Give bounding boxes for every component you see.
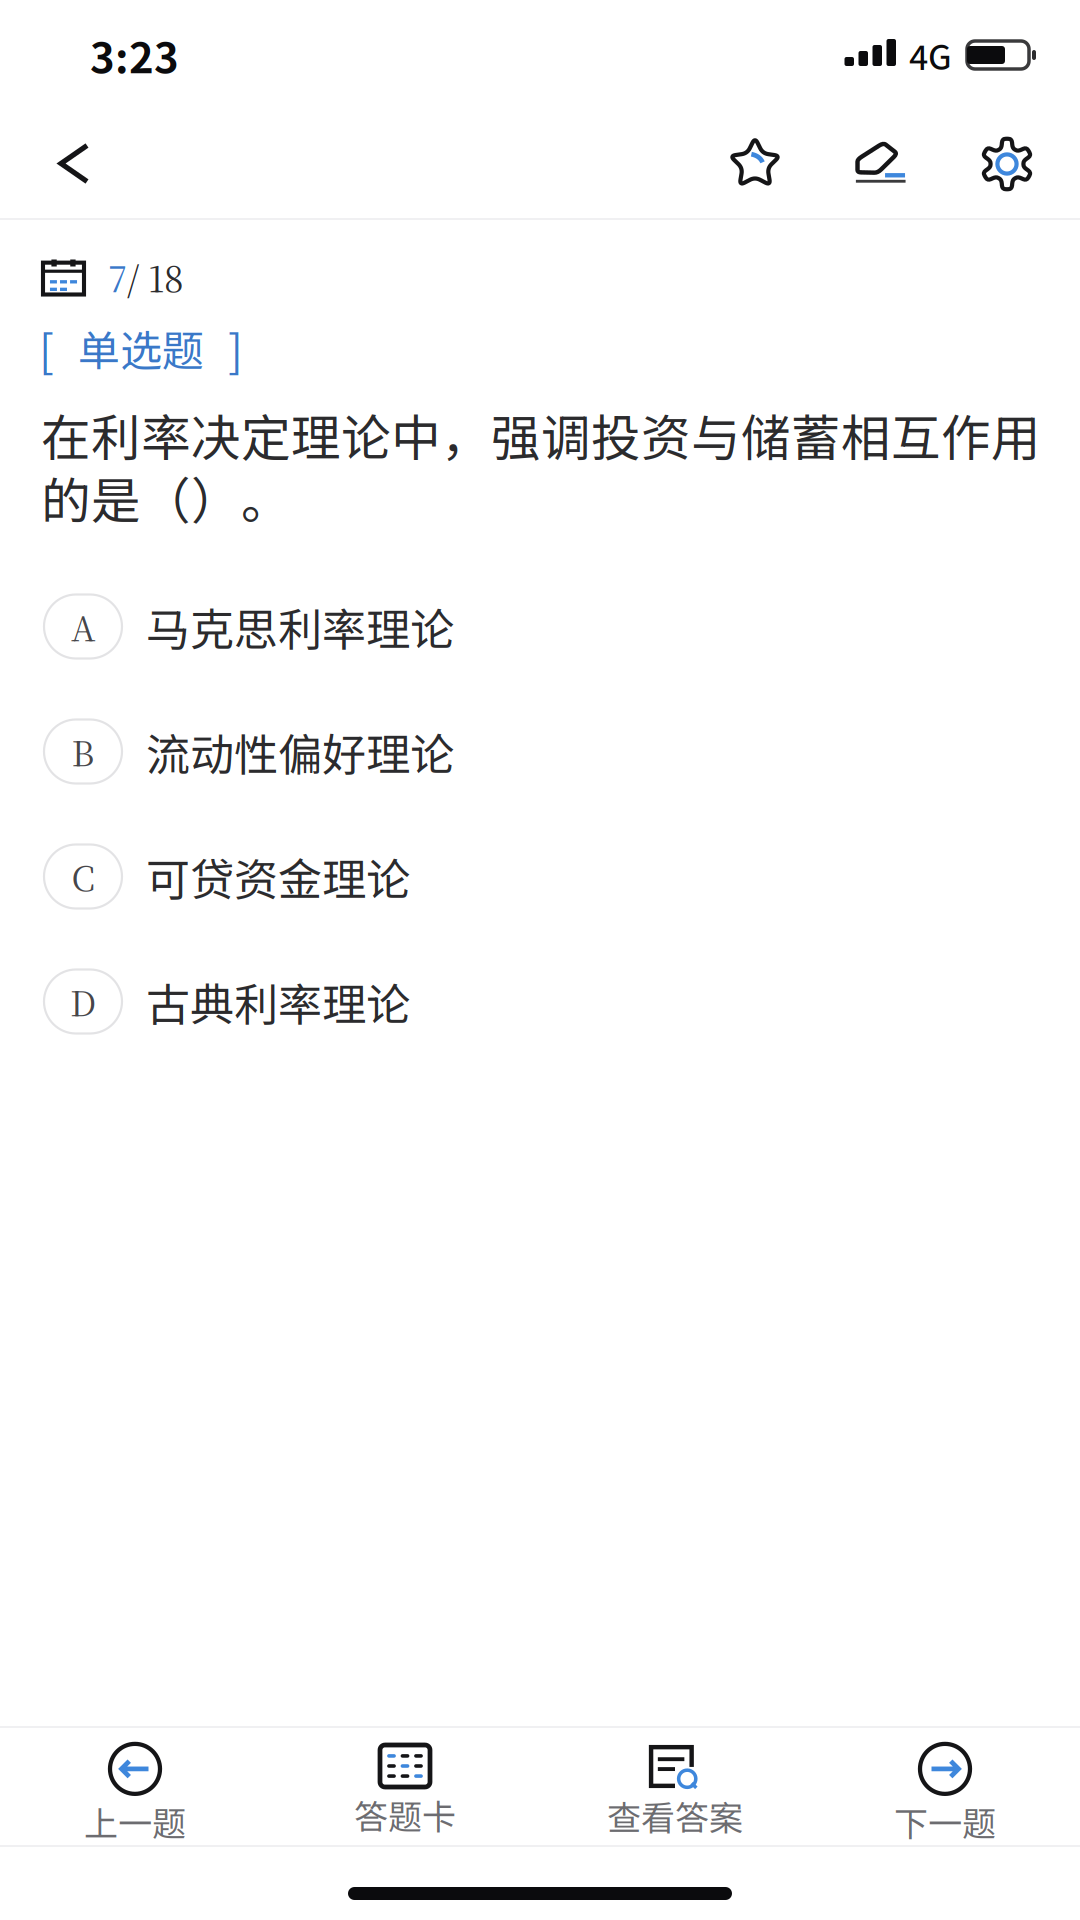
- staticText: A: [71, 602, 95, 651]
- staticText: 7: [108, 252, 127, 302]
- button[interactable]: A: [0, 564, 1080, 689]
- staticText: 答题卡: [354, 1790, 456, 1839]
- staticText: 古典利率理论: [146, 970, 410, 1033]
- staticText: 可贷资金理论: [146, 845, 410, 908]
- staticText: [: [39, 316, 54, 380]
- button[interactable]: Back: [0, 110, 118, 218]
- staticText: / 18: [127, 252, 184, 302]
- button[interactable]: 下一题: [810, 1728, 1080, 1845]
- staticText: 在利率决定理论中，强调投资与储蓄相互作用: [41, 399, 1041, 470]
- staticText: 流动性偏好理论: [146, 720, 454, 783]
- staticText: D: [70, 977, 96, 1026]
- staticText: B: [71, 727, 94, 776]
- staticText: 单选题: [78, 318, 204, 378]
- staticText: 马克思利率理论: [146, 595, 454, 658]
- button[interactable]: Settings: [959, 110, 1055, 218]
- staticText: 3:23: [90, 25, 179, 85]
- button[interactable]: 答题卡: [270, 1728, 540, 1845]
- button[interactable]: Favorite: [707, 110, 803, 218]
- staticText: ]: [228, 316, 243, 380]
- staticText: 的是（）。: [41, 462, 291, 533]
- button[interactable]: B: [0, 689, 1080, 814]
- staticText: 查看答案: [607, 1791, 743, 1840]
- button[interactable]: Notes: [833, 110, 929, 218]
- button[interactable]: D: [0, 939, 1080, 1064]
- staticText: 下一题: [894, 1797, 996, 1846]
- staticText: 4G: [909, 30, 952, 80]
- staticText: 上一题: [84, 1797, 186, 1846]
- button[interactable]: 上一题: [0, 1728, 270, 1845]
- button[interactable]: 查看答案: [540, 1728, 810, 1845]
- staticText: C: [71, 852, 94, 901]
- button[interactable]: C: [0, 814, 1080, 939]
